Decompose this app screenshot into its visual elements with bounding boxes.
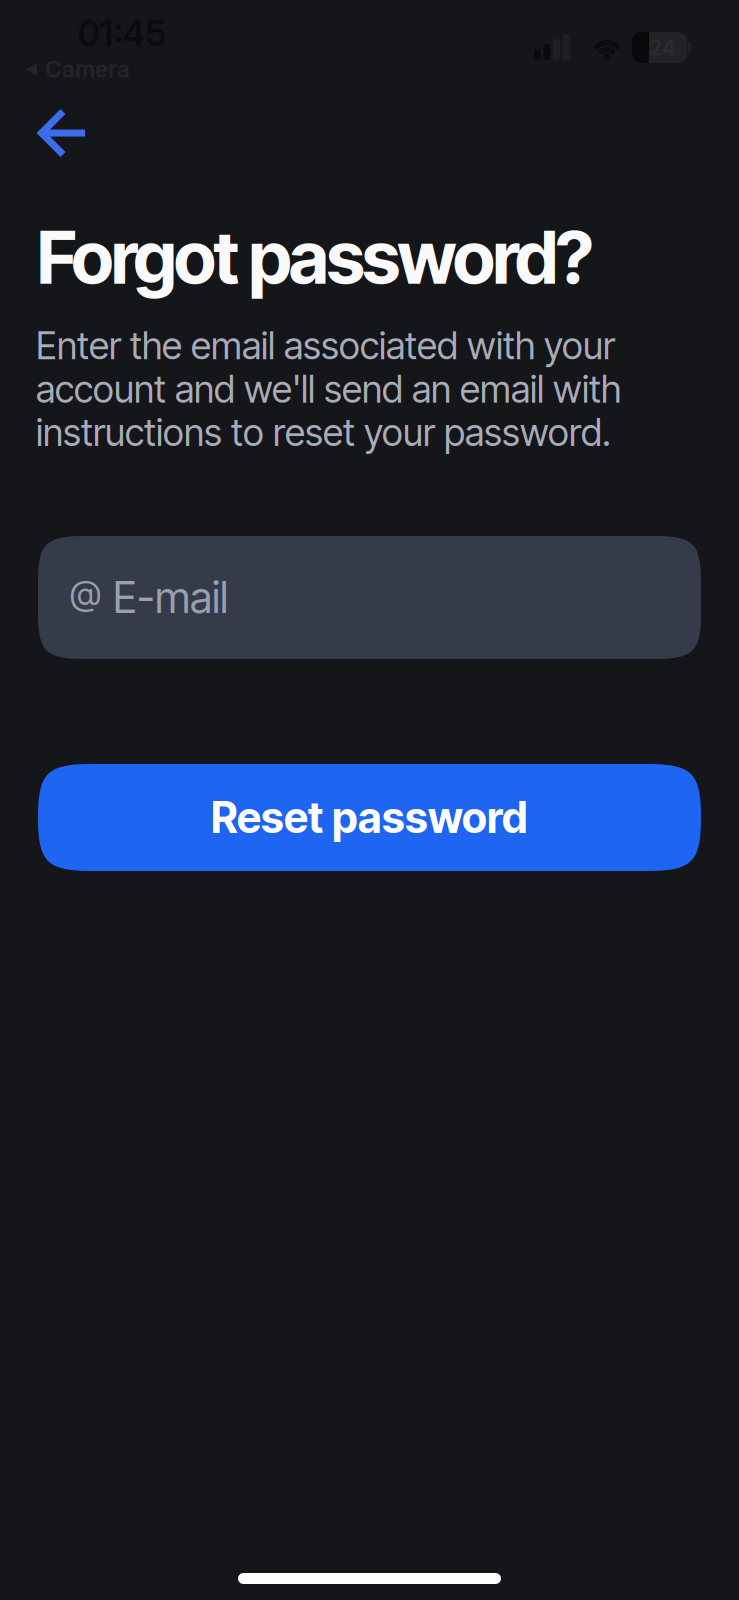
staticText: 24 (649, 35, 676, 60)
staticText: E-mail (113, 572, 228, 623)
staticText: Enter the email associated with your acc… (36, 324, 621, 454)
staticText: @ (70, 571, 101, 613)
button[interactable]: Back (39, 108, 86, 158)
staticText: Forgot password? (37, 214, 593, 301)
staticText: Camera (45, 56, 130, 83)
button[interactable]: Reset password (38, 764, 701, 871)
staticText: 01:45 (77, 13, 166, 54)
button[interactable]: E-mail (38, 536, 701, 659)
staticText: Reset password (211, 792, 528, 843)
